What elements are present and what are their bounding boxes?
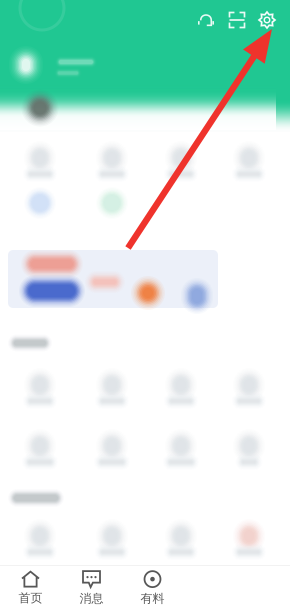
staticText: 有料 xyxy=(140,591,164,606)
staticText: 消息 xyxy=(79,591,103,606)
button[interactable]: Settings xyxy=(252,4,282,36)
button[interactable]: Customer service xyxy=(190,4,222,36)
button[interactable]: 首页 xyxy=(0,566,61,611)
button[interactable]: Scan xyxy=(222,4,252,36)
button[interactable]: 消息 xyxy=(61,566,122,611)
staticText: 首页 xyxy=(18,591,42,605)
button[interactable]: 有料 xyxy=(122,566,183,611)
